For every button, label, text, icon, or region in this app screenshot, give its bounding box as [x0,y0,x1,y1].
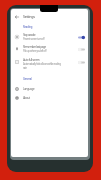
button[interactable]: Back [11,12,23,21]
staticText: Auto full screen [23,58,40,62]
button[interactable]: Remember last page [11,44,88,59]
staticText: Prevent screen turn off [23,37,45,41]
staticText: Language [23,87,35,91]
staticText: Reading [23,25,33,29]
staticText: Automatically hide all icons while readi… [23,62,63,70]
button[interactable]: Language [11,85,88,93]
staticText: Pick up where you left off [23,49,47,53]
button[interactable]: Stay awake [11,32,88,47]
staticText: Remember last page [23,45,46,49]
staticText: Settings [23,14,35,19]
button[interactable]: Auto full screen [11,57,88,72]
staticText: Stay awake [23,33,36,37]
button[interactable]: About [11,94,88,102]
staticText: About [23,96,30,100]
staticText: General [23,77,32,81]
